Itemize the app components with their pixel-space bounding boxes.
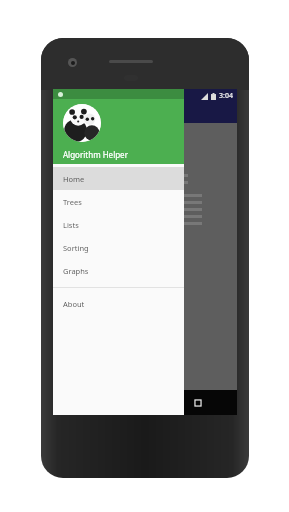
button[interactable]: Trees <box>53 190 184 213</box>
staticText: Lists <box>63 220 79 230</box>
staticText: Home <box>63 174 85 184</box>
button[interactable]: About <box>53 292 184 315</box>
button[interactable]: Algorithm Helper <box>53 99 184 164</box>
staticText: Graphs <box>63 266 89 276</box>
staticText: 3:04 <box>219 91 233 101</box>
button[interactable]: Graphs <box>53 259 184 282</box>
staticText: the <box>61 129 90 152</box>
button[interactable]: Recent apps <box>185 390 211 415</box>
staticText: Trees <box>63 197 82 207</box>
button[interactable]: Sorting <box>53 236 184 259</box>
staticText: Sorting <box>63 243 89 253</box>
staticText: About <box>63 299 85 309</box>
staticText: Algorithm Helper <box>63 149 128 160</box>
button[interactable]: Lists <box>53 213 184 236</box>
button[interactable]: Home <box>53 167 184 190</box>
